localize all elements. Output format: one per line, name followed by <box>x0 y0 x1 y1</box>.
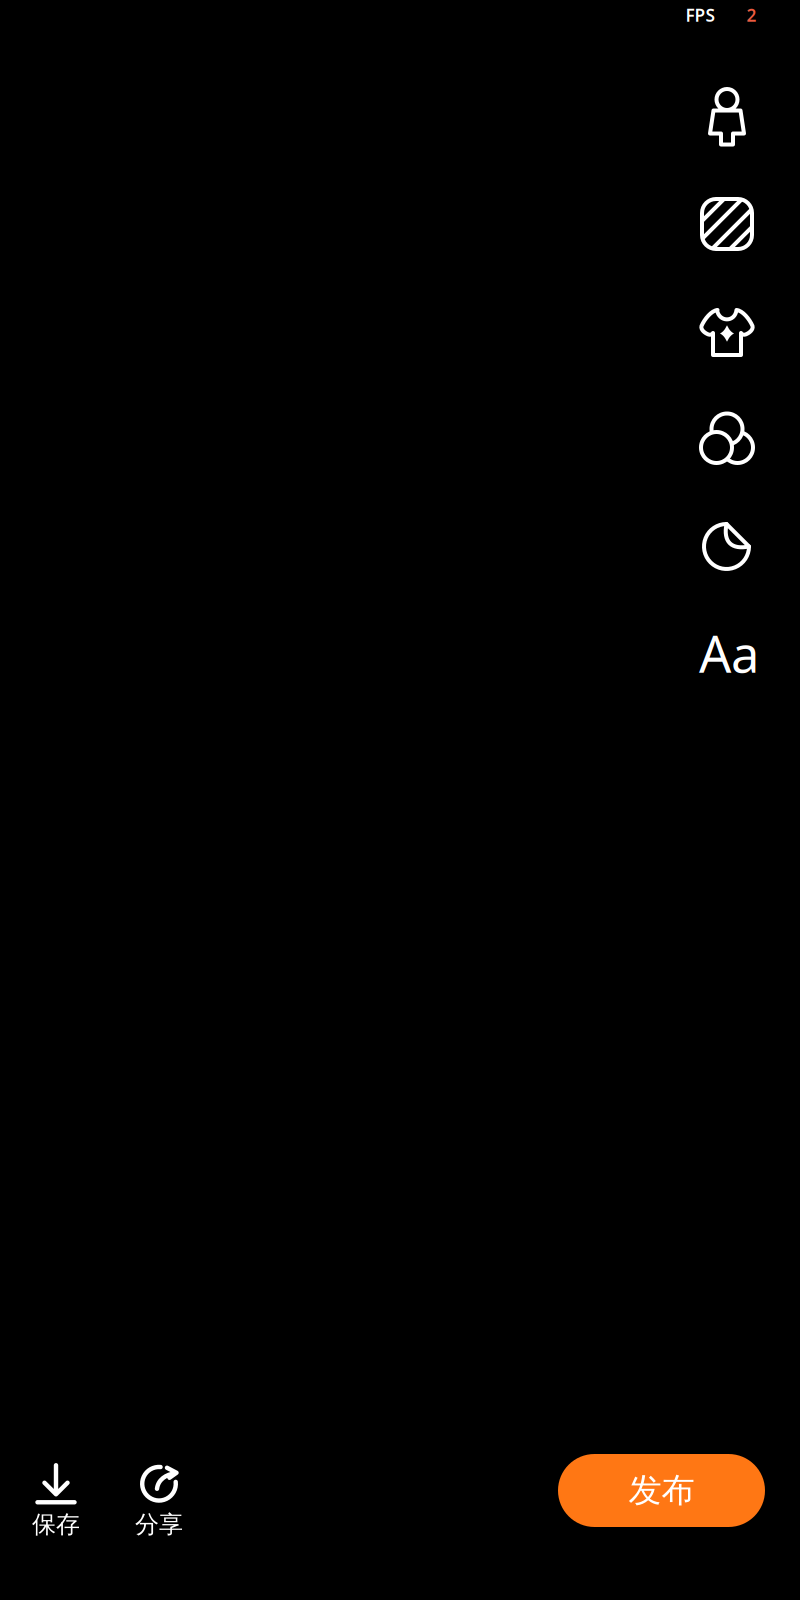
button[interactable]: 分享 <box>117 1455 201 1547</box>
staticText: 发布 <box>628 1470 694 1511</box>
button[interactable]: 发布 <box>558 1454 765 1527</box>
staticText: FPS <box>685 3 715 26</box>
button[interactable]: Add text <box>685 609 773 697</box>
staticText: 2 <box>746 3 756 26</box>
button[interactable]: Body shape <box>683 73 771 161</box>
button[interactable]: Background texture <box>683 180 771 268</box>
button[interactable]: Outfit <box>683 288 771 376</box>
button[interactable]: 保存 <box>14 1455 98 1547</box>
staticText: 分享 <box>135 1510 183 1539</box>
staticText: 保存 <box>32 1510 80 1539</box>
button[interactable]: Stickers <box>683 502 771 590</box>
staticText: Aa <box>699 619 759 687</box>
button[interactable]: Colour filters <box>683 394 771 482</box>
